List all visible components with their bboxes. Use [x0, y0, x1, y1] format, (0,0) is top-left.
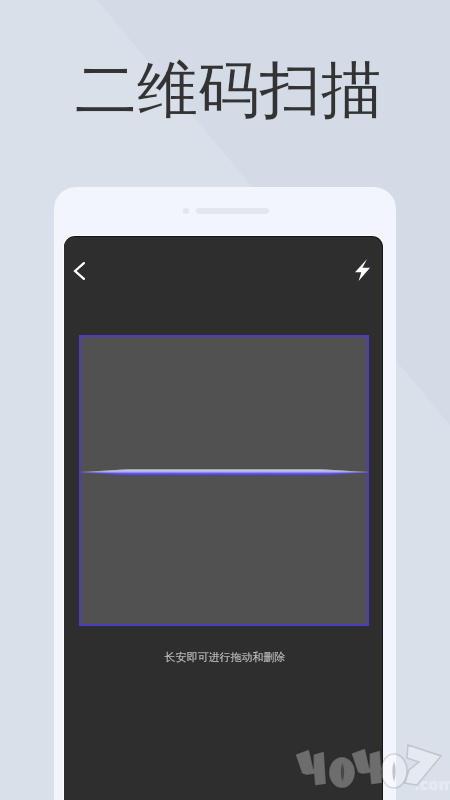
staticText: 长安即可进行拖动和删除	[66, 650, 382, 664]
button[interactable]: Flash	[334, 243, 382, 297]
staticText: 二维码扫描	[75, 52, 383, 129]
button[interactable]: Back	[64, 243, 110, 297]
staticText: .com	[415, 773, 450, 795]
